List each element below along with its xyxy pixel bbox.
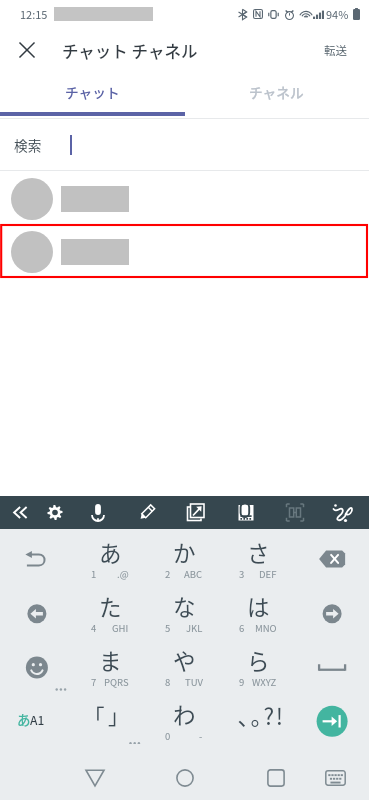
button[interactable]: あ: [73, 529, 147, 583]
button[interactable]: Settings: [36, 496, 76, 529]
staticText: ABC: [184, 567, 203, 581]
button[interactable]: ｢｣: [73, 691, 147, 744]
staticText: 7: [91, 675, 97, 689]
button[interactable]: Collapse keyboard: [0, 496, 36, 529]
button[interactable]: か: [147, 529, 221, 583]
staticText: DEF: [259, 567, 277, 581]
staticText: MNO: [255, 621, 277, 635]
button[interactable]: Back: [79, 762, 111, 794]
staticText: PQRS: [104, 675, 129, 689]
staticText: GHI: [112, 621, 129, 635]
button[interactable]: Stickers: [315, 496, 369, 529]
button[interactable]: は: [221, 583, 295, 637]
staticText: 9: [239, 675, 245, 689]
staticText: 2: [165, 567, 171, 581]
button[interactable]: ら: [221, 637, 295, 691]
staticText: わ: [173, 698, 196, 731]
button[interactable]: [0, 224, 369, 278]
staticText: は: [247, 590, 270, 623]
button[interactable]: Handwriting: [120, 496, 168, 529]
staticText: 0: [165, 729, 171, 743]
button[interactable]: チャネル: [184, 72, 369, 119]
button[interactable]: [295, 529, 369, 583]
button[interactable]: [0, 171, 369, 225]
button[interactable]: Recents: [260, 762, 292, 794]
button[interactable]: [295, 691, 369, 744]
staticText: 転送: [324, 42, 347, 59]
staticText: ま: [99, 644, 122, 677]
button[interactable]: ま: [73, 637, 147, 691]
button[interactable]: さ: [221, 529, 295, 583]
button[interactable]: [0, 583, 73, 637]
button[interactable]: な: [147, 583, 221, 637]
button[interactable]: チャット: [0, 72, 184, 119]
staticText: .@: [117, 567, 129, 581]
staticText: 12:15: [20, 6, 48, 22]
staticText: -: [199, 729, 203, 743]
staticText: JKL: [186, 621, 203, 635]
button[interactable]: Voice input: [76, 496, 120, 529]
staticText: 94%: [326, 6, 349, 22]
staticText: や: [173, 644, 196, 677]
staticText: WXYZ: [252, 675, 277, 689]
button[interactable]: Home: [169, 762, 201, 794]
button[interactable]: あ: [0, 691, 73, 744]
button[interactable]: [295, 637, 369, 691]
button[interactable]: や: [147, 637, 221, 691]
staticText: さ: [247, 536, 270, 569]
staticText: あ: [17, 709, 31, 729]
staticText: チャット: [65, 82, 120, 102]
staticText: 4: [91, 621, 97, 635]
staticText: チャット チャネル: [62, 39, 198, 63]
staticText: TUV: [185, 675, 203, 689]
button[interactable]: Clipboard: [217, 496, 267, 529]
staticText: か: [173, 536, 196, 569]
staticText: A1: [30, 711, 45, 728]
button[interactable]: ､｡?!: [221, 691, 295, 744]
button[interactable]: Floating keyboard: [168, 496, 217, 529]
staticText: た: [99, 590, 122, 623]
button[interactable]: [0, 637, 73, 691]
staticText: チャネル: [249, 82, 304, 102]
staticText: 8: [165, 675, 171, 689]
staticText: な: [173, 590, 196, 623]
button[interactable]: 転送: [318, 36, 353, 65]
staticText: ら: [247, 644, 270, 677]
staticText: 5: [165, 621, 171, 635]
button[interactable]: [295, 583, 369, 637]
staticText: 3: [239, 567, 245, 581]
staticText: 検索: [14, 135, 42, 155]
button[interactable]: [0, 529, 73, 583]
button[interactable]: Text scan: [267, 496, 315, 529]
button[interactable]: Close: [5, 28, 49, 72]
button[interactable]: た: [73, 583, 147, 637]
staticText: ｢｣: [94, 700, 122, 730]
button[interactable]: Switch keyboard: [319, 762, 351, 794]
staticText: ､｡?!: [238, 699, 285, 732]
staticText: 6: [239, 621, 245, 635]
staticText: あ: [99, 536, 122, 569]
button[interactable]: わ: [147, 691, 221, 744]
staticText: 1: [91, 567, 97, 581]
